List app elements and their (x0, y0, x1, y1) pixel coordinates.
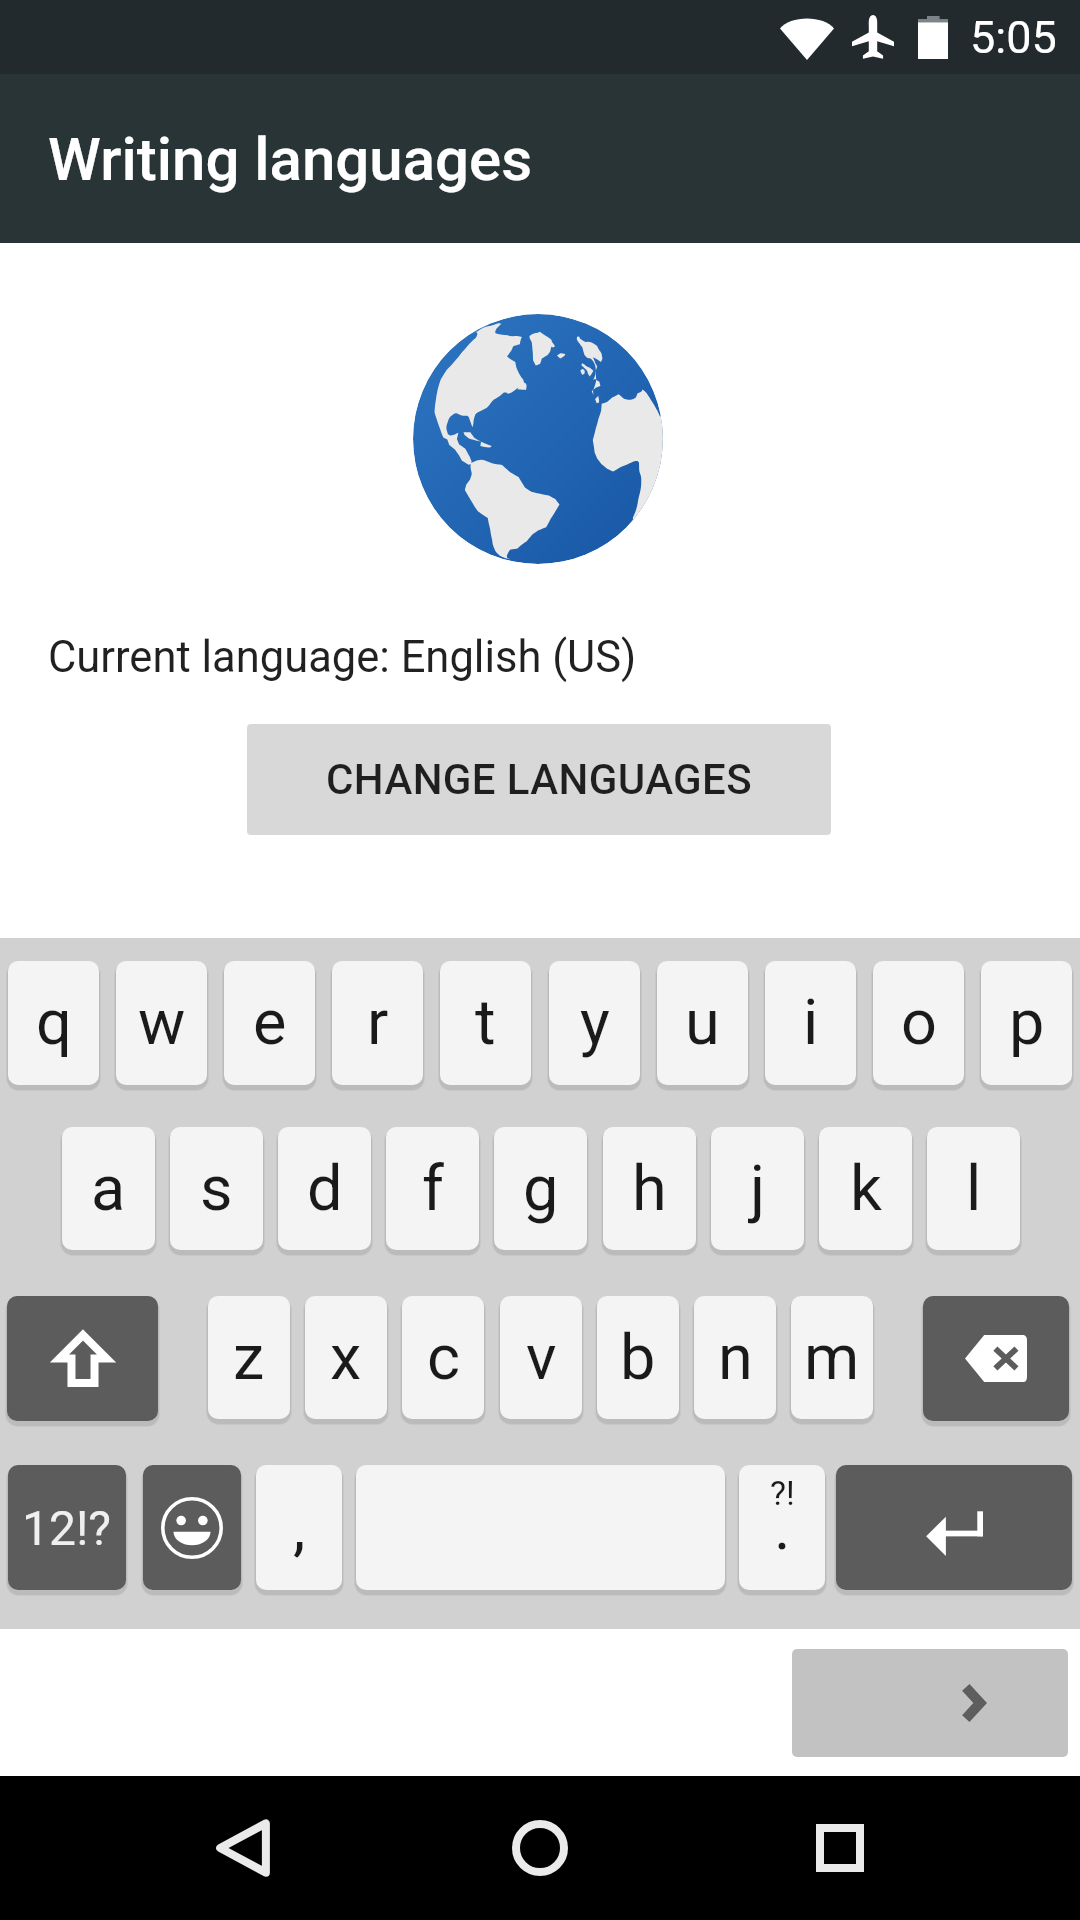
button[interactable]: o (873, 961, 964, 1085)
staticText: k (850, 1152, 882, 1226)
staticText: Current language: English (US) (48, 632, 637, 683)
staticText: c (427, 1321, 460, 1395)
staticText: l (966, 1152, 982, 1226)
button[interactable]: m (791, 1296, 873, 1419)
staticText: g (523, 1152, 559, 1226)
button[interactable]: Backspace (923, 1296, 1069, 1421)
button[interactable]: b (597, 1296, 679, 1419)
staticText: Writing languages (48, 124, 533, 194)
staticText: , (293, 1491, 306, 1565)
button[interactable]: y (549, 961, 640, 1085)
button[interactable]: Emoji (143, 1465, 241, 1590)
staticText: p (1009, 986, 1045, 1060)
staticText: z (233, 1321, 265, 1395)
staticText: b (620, 1321, 656, 1395)
staticText: t (475, 986, 496, 1060)
button[interactable]: i (765, 961, 856, 1085)
button[interactable]: Next (792, 1649, 1068, 1757)
button[interactable]: w (116, 961, 207, 1085)
button[interactable]: Home (497, 1805, 583, 1891)
staticText: j (750, 1152, 766, 1226)
button[interactable]: s (170, 1127, 263, 1250)
button[interactable]: t (440, 961, 531, 1085)
button[interactable]: n (694, 1296, 776, 1419)
staticText: u (685, 986, 720, 1060)
button[interactable]: g (494, 1127, 587, 1250)
staticText: 5:05 (970, 11, 1057, 64)
button[interactable]: k (819, 1127, 912, 1250)
staticText: ?! (770, 1473, 795, 1513)
button[interactable]: v (500, 1296, 582, 1419)
staticText: r (367, 986, 389, 1060)
button[interactable]: x (305, 1296, 387, 1419)
staticText: s (200, 1152, 233, 1226)
staticText: m (804, 1321, 860, 1395)
staticText: d (307, 1152, 343, 1226)
staticText: e (253, 986, 287, 1060)
staticText: . (774, 1491, 791, 1565)
button[interactable]: l (927, 1127, 1020, 1250)
button[interactable]: c (402, 1296, 484, 1419)
button[interactable]: p (981, 961, 1072, 1085)
staticText: y (580, 986, 610, 1060)
button[interactable]: d (278, 1127, 371, 1250)
button[interactable]: , (256, 1465, 342, 1590)
staticText: w (138, 986, 186, 1060)
button[interactable]: e (224, 961, 315, 1085)
staticText: n (718, 1321, 753, 1395)
staticText: i (803, 986, 819, 1060)
staticText: v (526, 1321, 557, 1395)
button[interactable]: j (711, 1127, 804, 1250)
button[interactable]: 12!? (8, 1465, 126, 1590)
button[interactable]: Enter (836, 1465, 1072, 1590)
button[interactable]: Back (200, 1805, 286, 1891)
button[interactable]: a (62, 1127, 155, 1250)
button[interactable]: z (208, 1296, 290, 1419)
button[interactable]: h (603, 1127, 696, 1250)
staticText: a (91, 1152, 126, 1226)
staticText: f (422, 1152, 444, 1226)
staticText: x (330, 1321, 362, 1395)
button[interactable]: Shift (7, 1296, 158, 1421)
button[interactable]: CHANGE LANGUAGES (247, 724, 831, 835)
button[interactable]: . (739, 1465, 825, 1590)
button[interactable]: f (386, 1127, 479, 1250)
staticText: 12!? (22, 1500, 112, 1556)
staticText: o (901, 986, 937, 1060)
button[interactable]: Recent apps (797, 1805, 883, 1891)
button[interactable]: r (332, 961, 423, 1085)
button[interactable]: q (8, 961, 99, 1085)
staticText: h (632, 1152, 667, 1226)
staticText: q (36, 986, 72, 1060)
staticText: CHANGE LANGUAGES (326, 755, 753, 804)
button[interactable]: u (657, 961, 748, 1085)
